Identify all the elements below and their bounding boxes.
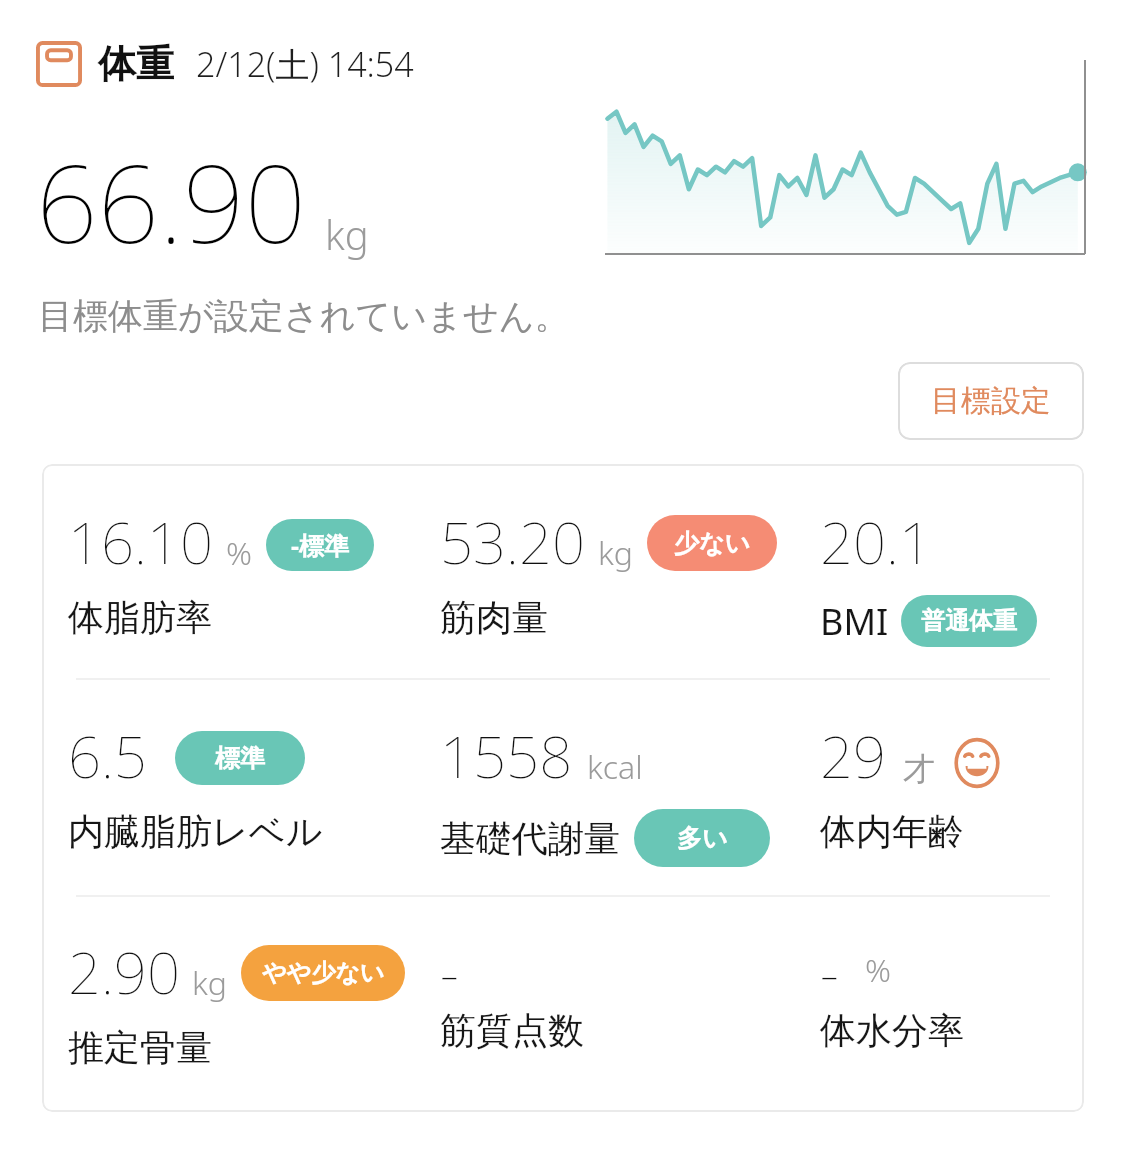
- button[interactable]: 目標設定: [898, 362, 1084, 440]
- staticText: 体脂肪率: [68, 595, 212, 640]
- staticText: 20.1: [820, 502, 932, 581]
- staticText: 29: [820, 716, 887, 795]
- staticText: -: [820, 932, 839, 998]
- staticText: 体水分率: [820, 1008, 964, 1053]
- staticText: 筋質点数: [440, 1008, 584, 1053]
- staticText: kcal: [587, 745, 643, 789]
- staticText: 推定骨量: [68, 1025, 212, 1070]
- staticText: kg: [325, 207, 369, 261]
- staticText: 内臓脂肪レベル: [68, 809, 323, 854]
- staticText: kg: [192, 961, 227, 1005]
- staticText: 6.5: [68, 716, 147, 795]
- staticText: %: [865, 948, 891, 992]
- staticText: %: [226, 531, 252, 575]
- staticText: 1558: [440, 716, 573, 795]
- other: Scale: [36, 41, 82, 87]
- staticText: 普通体重: [921, 606, 1017, 636]
- staticText: 2.90: [68, 932, 180, 1011]
- staticText: 筋肉量: [440, 595, 548, 640]
- staticText: 66.90: [36, 128, 307, 275]
- staticText: 16.10: [68, 502, 214, 581]
- staticText: -標準: [291, 528, 350, 562]
- staticText: 才: [903, 749, 935, 789]
- staticText: 体内年齢: [820, 809, 964, 854]
- staticText: 多い: [677, 823, 728, 854]
- staticText: 目標体重が設定されていません。: [38, 294, 570, 338]
- staticText: やや少ない: [262, 958, 385, 988]
- staticText: kg: [598, 531, 633, 575]
- staticText: 体重: [98, 40, 174, 88]
- other: Happy face: [951, 737, 1003, 789]
- staticText: 標準: [215, 743, 265, 774]
- staticText: 目標設定: [931, 382, 1051, 420]
- staticText: 53.20: [440, 502, 586, 581]
- staticText: 基礎代謝量: [440, 816, 620, 861]
- staticText: 少ない: [674, 528, 751, 559]
- staticText: BMI: [820, 597, 889, 646]
- staticText: 2/12(土) 14:54: [196, 41, 414, 87]
- staticText: -: [440, 932, 459, 998]
